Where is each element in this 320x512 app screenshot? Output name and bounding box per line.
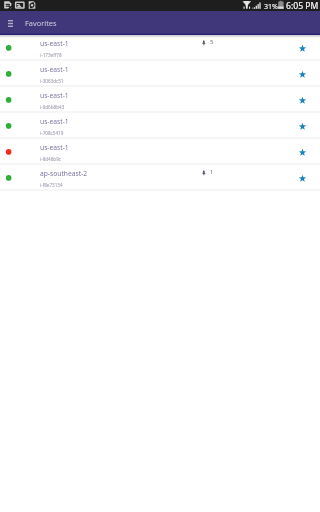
button[interactable]: Favorite <box>294 170 311 187</box>
staticText: i-173eff78 <box>40 52 62 58</box>
button[interactable]: us-east-1 <box>0 35 320 61</box>
button[interactable]: us-east-1 <box>0 113 320 139</box>
staticText: i-3063dc51 <box>40 78 64 84</box>
staticText: Favorites <box>25 18 57 28</box>
staticText: us-east-1 <box>40 143 69 152</box>
staticText: us-east-1 <box>40 65 69 74</box>
button[interactable]: Alarms <box>196 37 218 51</box>
staticText: us-east-1 <box>40 117 69 126</box>
button[interactable]: us-east-1 <box>0 87 320 113</box>
button[interactable]: Open navigation drawer <box>0 11 20 35</box>
staticText: i-8d46b9c <box>40 156 62 162</box>
button[interactable]: us-east-1 <box>0 139 320 165</box>
button[interactable]: us-east-1 <box>0 61 320 87</box>
staticText: 31% <box>264 1 279 11</box>
staticText: i-f8e73134 <box>40 182 63 188</box>
button[interactable]: Alarms <box>196 167 218 181</box>
button[interactable]: Favorite <box>294 40 311 57</box>
staticText: us-east-1 <box>40 91 69 100</box>
staticText: ap-southeast-2 <box>40 169 88 178</box>
button[interactable]: Favorite <box>294 144 311 161</box>
staticText: us-east-1 <box>40 39 69 48</box>
staticText: 5 <box>210 38 214 46</box>
staticText: 6:05 PM <box>286 0 319 11</box>
button[interactable]: Favorite <box>294 92 311 109</box>
button[interactable]: Favorite <box>294 118 311 135</box>
staticText: i-0d6b8b43 <box>40 104 65 110</box>
button[interactable]: ap-southeast-2 <box>0 165 320 191</box>
staticText: i-708c5419 <box>40 130 64 136</box>
button[interactable]: Favorite <box>294 66 311 83</box>
staticText: 1 <box>210 168 214 176</box>
